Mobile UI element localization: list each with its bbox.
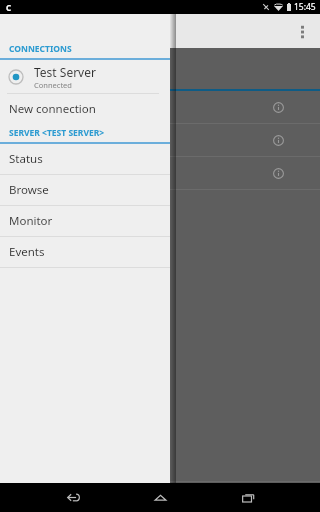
button[interactable]: Info — [0, 157, 320, 189]
staticText: Monitor — [9, 213, 53, 229]
other: Info — [262, 91, 294, 123]
staticText: CONNECTIONS — [9, 43, 72, 55]
button[interactable]: Info — [0, 124, 320, 156]
button[interactable]: More options — [287, 16, 317, 46]
staticText: Test Server — [34, 64, 96, 80]
staticText: SERVER <TEST SERVER> — [9, 127, 105, 139]
staticText: New connection — [9, 101, 96, 117]
staticText: Connected — [34, 80, 72, 90]
button[interactable]: Back — [58, 483, 88, 512]
button[interactable]: Status — [0, 144, 170, 174]
other: Info — [262, 157, 294, 189]
button[interactable]: www.prosysopc.com — [129, 491, 216, 503]
staticText: C — [6, 2, 12, 12]
staticText: 15:45 — [294, 1, 316, 13]
button[interactable]: Recent apps — [233, 483, 263, 512]
staticText: Status — [9, 151, 43, 167]
button[interactable]: Test Server — [0, 60, 170, 93]
button[interactable]: Home — [145, 483, 175, 512]
button[interactable]: Info — [0, 91, 320, 123]
button[interactable]: New connection — [0, 94, 170, 124]
button[interactable]: Events — [0, 237, 170, 267]
staticText: Browse — [9, 182, 49, 198]
other: Info — [262, 124, 294, 156]
button[interactable]: Browse — [0, 175, 170, 205]
staticText: Events — [9, 244, 45, 260]
button[interactable]: Monitor — [0, 206, 170, 236]
staticText: www.prosysopc.com — [129, 491, 216, 503]
